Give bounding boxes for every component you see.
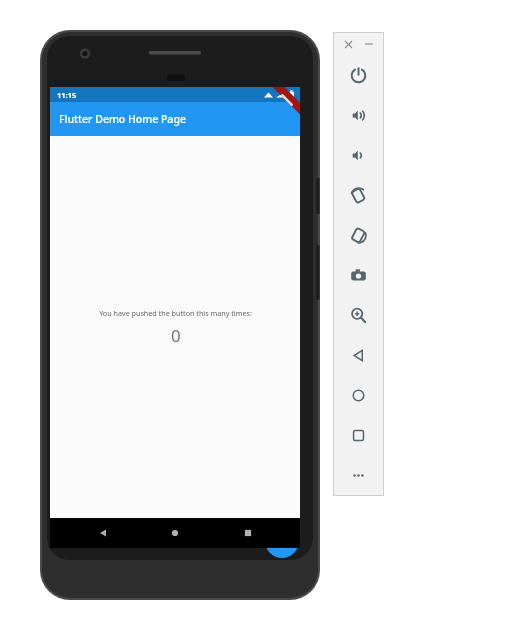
button[interactable]: Back xyxy=(83,518,123,548)
button[interactable]: Overview xyxy=(334,415,383,455)
button[interactable]: Home xyxy=(155,518,195,548)
button[interactable]: Take screenshot xyxy=(334,255,383,295)
button[interactable]: Increment xyxy=(265,524,299,558)
button[interactable]: Back xyxy=(334,335,383,375)
button[interactable]: Rotate right xyxy=(334,215,383,255)
staticText: Flutter Demo Home Page xyxy=(59,112,186,126)
button[interactable]: Power xyxy=(334,55,383,95)
staticText: 11:15 xyxy=(57,90,77,100)
button[interactable]: Zoom xyxy=(334,295,383,335)
staticText: You have pushed the button this many tim… xyxy=(99,308,252,318)
button[interactable]: Home xyxy=(334,375,383,415)
button[interactable]: Rotate left xyxy=(334,175,383,215)
staticText: 0 xyxy=(171,324,181,347)
button[interactable]: Minimize xyxy=(361,36,377,52)
button[interactable]: More xyxy=(334,455,383,495)
button[interactable]: Close xyxy=(340,36,356,52)
button[interactable]: Recent apps xyxy=(228,518,268,548)
button[interactable]: Volume up xyxy=(334,95,383,135)
button[interactable]: Volume down xyxy=(334,135,383,175)
